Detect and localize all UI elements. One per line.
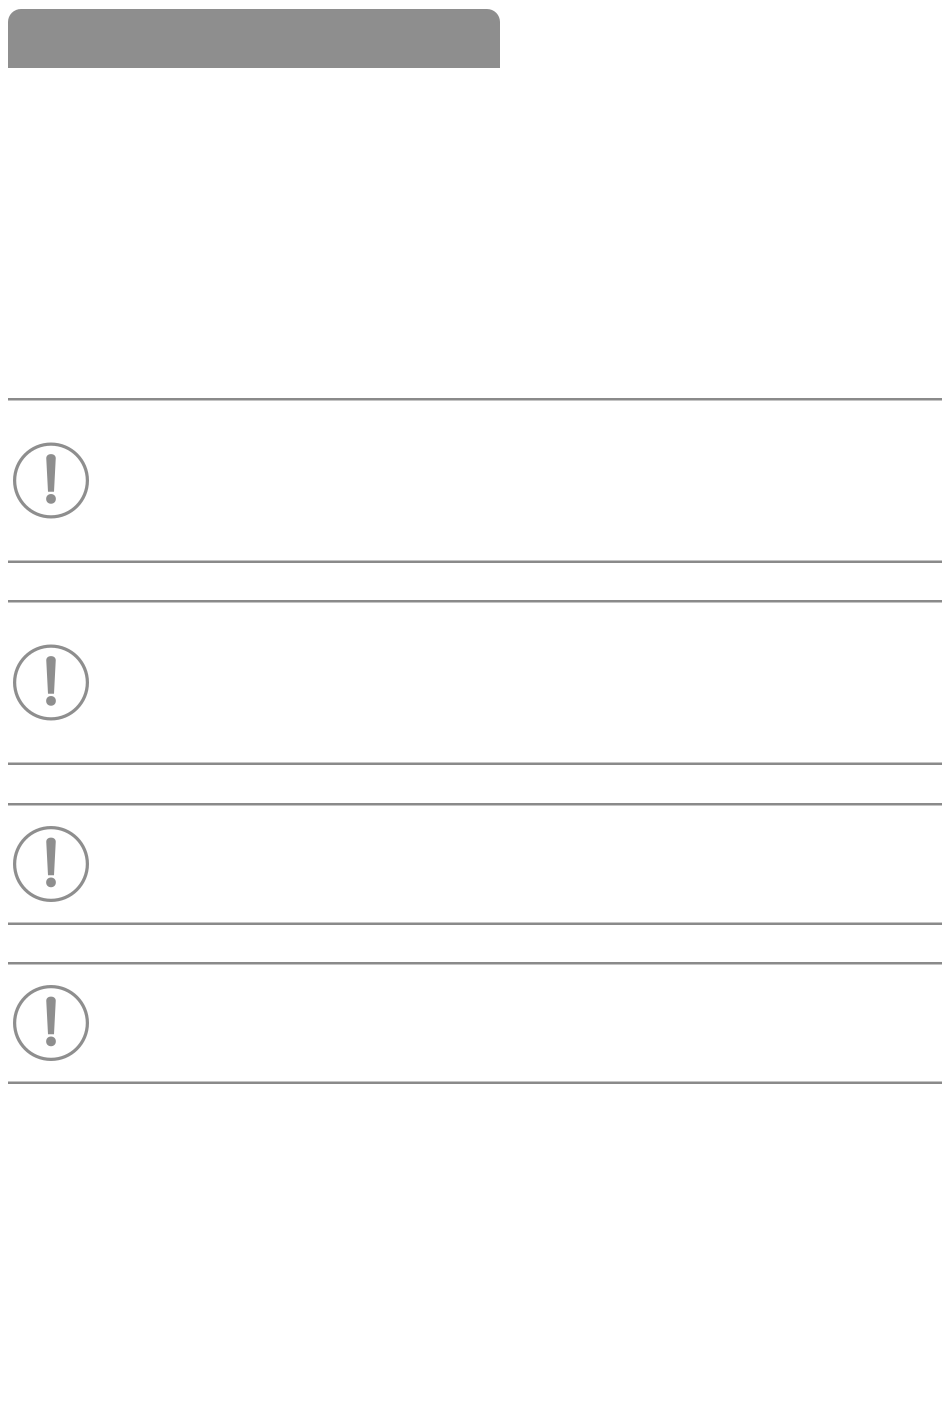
button[interactable]: Item [0, 964, 950, 1081]
button[interactable]: Item [0, 805, 950, 922]
button[interactable]: Item [0, 400, 950, 560]
button[interactable]: Item [0, 602, 950, 762]
